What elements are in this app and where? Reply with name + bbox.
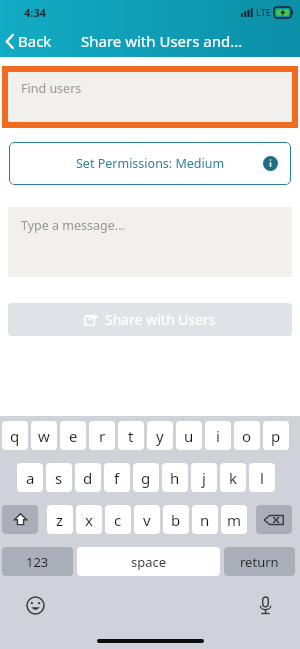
button[interactable]: 123 <box>2 547 73 576</box>
button[interactable]: l <box>249 463 275 492</box>
staticText: e <box>69 426 78 446</box>
button[interactable]: Emoji keyboard <box>22 592 48 618</box>
button[interactable]: Back <box>0 27 60 55</box>
staticText: i <box>216 426 220 446</box>
staticText: x <box>85 510 93 530</box>
staticText: w <box>38 426 50 446</box>
staticText: r <box>99 426 106 446</box>
staticText: v <box>143 510 151 530</box>
staticText: Type a message... <box>21 217 125 234</box>
button[interactable]: x <box>76 505 102 534</box>
button[interactable]: i <box>205 421 231 450</box>
button[interactable]: r <box>89 421 115 450</box>
button[interactable]: v <box>134 505 160 534</box>
button[interactable]: e <box>60 421 86 450</box>
button[interactable]: u <box>176 421 202 450</box>
button[interactable]: p <box>263 421 289 450</box>
staticText: Find users <box>21 80 82 97</box>
button[interactable]: return <box>224 547 295 576</box>
button[interactable]: a <box>17 463 43 492</box>
staticText: 123 <box>26 553 49 571</box>
staticText: Share with Users <box>105 310 216 329</box>
button[interactable]: Find users <box>2 66 298 128</box>
staticText: Share with Users and... <box>81 31 243 51</box>
staticText: g <box>141 468 151 488</box>
button[interactable]: g <box>133 463 159 492</box>
button[interactable]: m <box>221 505 247 534</box>
staticText: Set Permissions: Medium <box>76 155 225 172</box>
button[interactable]: Backspace <box>256 505 292 534</box>
button[interactable]: b <box>163 505 189 534</box>
staticText: Back <box>18 31 52 51</box>
staticText: m <box>227 510 242 530</box>
staticText: s <box>55 468 63 488</box>
staticText: b <box>171 510 181 530</box>
button[interactable]: Shift <box>2 505 38 534</box>
button[interactable]: o <box>234 421 260 450</box>
button[interactable]: space <box>77 547 220 576</box>
staticText: f <box>114 468 120 488</box>
staticText: 4:34 <box>24 5 46 20</box>
staticText: d <box>83 468 93 488</box>
staticText: q <box>10 426 20 446</box>
button[interactable]: z <box>47 505 73 534</box>
button[interactable]: d <box>75 463 101 492</box>
button[interactable]: s <box>46 463 72 492</box>
staticText: j <box>202 468 206 488</box>
button[interactable]: Voice input <box>252 592 278 618</box>
staticText: u <box>184 426 194 446</box>
staticText: h <box>170 468 180 488</box>
staticText: z <box>56 510 64 530</box>
button[interactable]: w <box>31 421 57 450</box>
button[interactable]: f <box>104 463 130 492</box>
button[interactable]: n <box>192 505 218 534</box>
staticText: n <box>200 510 210 530</box>
staticText: space <box>131 553 167 571</box>
staticText: k <box>229 468 238 488</box>
staticText: o <box>242 426 252 446</box>
staticText: p <box>271 426 281 446</box>
staticText: t <box>128 426 134 446</box>
button[interactable]: Set Permissions: Medium <box>9 142 291 185</box>
button[interactable]: j <box>191 463 217 492</box>
staticText: return <box>240 553 279 571</box>
button[interactable]: h <box>162 463 188 492</box>
button[interactable]: Type a message... <box>8 207 292 277</box>
staticText: a <box>26 468 35 488</box>
other: Permissions info <box>263 156 278 171</box>
button[interactable]: t <box>118 421 144 450</box>
button[interactable]: c <box>105 505 131 534</box>
staticText: c <box>114 510 122 530</box>
staticText: LTE <box>256 6 271 18</box>
staticText: y <box>156 426 164 446</box>
button[interactable]: y <box>147 421 173 450</box>
button[interactable]: k <box>220 463 246 492</box>
button[interactable]: q <box>2 421 28 450</box>
staticText: l <box>260 468 264 488</box>
button[interactable]: Share with Users <box>8 303 292 336</box>
